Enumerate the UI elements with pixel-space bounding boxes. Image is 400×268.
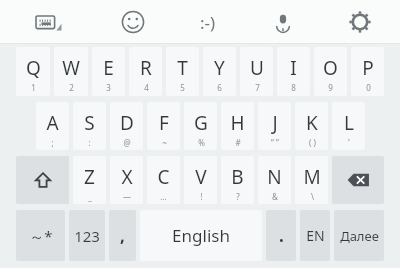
button[interactable]: .	[266, 210, 296, 261]
button[interactable]: F	[147, 102, 180, 150]
button[interactable]: A	[36, 102, 69, 150]
staticText: #	[235, 137, 241, 148]
staticText: 123	[74, 226, 100, 246]
staticText: EN	[306, 226, 325, 245]
staticText: 2	[69, 82, 74, 93]
staticText: X	[121, 164, 133, 190]
staticText: A	[46, 110, 59, 136]
staticText: &	[272, 191, 278, 202]
staticText: W	[62, 55, 80, 81]
staticText: _	[88, 191, 92, 202]
button[interactable]: J	[258, 102, 291, 150]
button[interactable]: Shift	[16, 156, 69, 204]
staticText: R	[140, 55, 152, 81]
staticText: ;	[51, 137, 54, 148]
staticText: J	[272, 110, 278, 136]
button[interactable]: Change keyboard	[0, 0, 96, 44]
staticText: \	[311, 191, 314, 202]
staticText: ,	[120, 224, 125, 247]
staticText: L	[344, 110, 354, 136]
staticText: I	[290, 55, 297, 81]
staticText: .	[279, 224, 284, 247]
staticText: English	[172, 224, 230, 247]
button[interactable]: G	[184, 102, 217, 150]
staticText: C	[157, 164, 170, 190]
button[interactable]: S	[73, 102, 106, 150]
button[interactable]: Backspace	[332, 156, 384, 204]
button[interactable]: B	[221, 156, 254, 204]
button[interactable]: Z	[73, 156, 106, 204]
staticText: ~	[162, 137, 167, 148]
button[interactable]: Y	[203, 47, 236, 96]
staticText: ( )	[309, 137, 316, 148]
button[interactable]: ,	[109, 210, 136, 261]
button[interactable]: N	[258, 156, 291, 204]
staticText: S	[84, 110, 95, 136]
staticText: V	[195, 164, 207, 190]
staticText: ～*	[29, 226, 53, 246]
staticText: E	[103, 55, 114, 81]
staticText: N	[267, 164, 282, 190]
button[interactable]: Settings	[320, 0, 400, 44]
staticText: 0	[366, 82, 371, 93]
staticText: “ ”	[271, 137, 279, 148]
staticText: F	[159, 110, 169, 136]
staticText: M	[303, 164, 321, 190]
button[interactable]: Далее	[334, 210, 384, 261]
staticText: Далее	[340, 227, 379, 245]
staticText: Z	[84, 164, 95, 190]
button[interactable]: E	[92, 47, 125, 96]
staticText: D	[120, 110, 134, 136]
button[interactable]: Text emoticons	[170, 0, 246, 44]
staticText: —	[123, 191, 131, 202]
staticText: 4	[144, 82, 149, 93]
button[interactable]: P	[351, 47, 384, 96]
button[interactable]: English	[140, 210, 262, 261]
button[interactable]: O	[314, 47, 347, 96]
staticText: ’	[348, 137, 350, 148]
button[interactable]: I	[277, 47, 310, 96]
button[interactable]: H	[221, 102, 254, 150]
staticText: 6	[217, 82, 222, 93]
button[interactable]: EN	[300, 210, 330, 261]
button[interactable]: L	[332, 102, 365, 150]
staticText: 7	[255, 82, 260, 93]
staticText: O	[323, 55, 338, 81]
staticText: U	[250, 55, 264, 81]
staticText: %	[198, 137, 205, 148]
staticText: 9	[328, 82, 333, 93]
staticText: K	[306, 110, 318, 136]
staticText: ?	[236, 191, 240, 202]
staticText: 1	[31, 82, 36, 93]
button[interactable]: C	[147, 156, 180, 204]
button[interactable]: W	[54, 47, 88, 96]
staticText: G	[194, 110, 208, 136]
button[interactable]: U	[240, 47, 273, 96]
button[interactable]: Emoji	[96, 0, 170, 44]
staticText: B	[231, 164, 244, 190]
staticText: 8	[291, 82, 296, 93]
button[interactable]: ～*	[16, 210, 65, 261]
staticText: T	[177, 55, 188, 81]
staticText: !	[200, 191, 203, 202]
button[interactable]: R	[129, 47, 162, 96]
staticText: 5	[180, 82, 185, 93]
staticText: …	[160, 191, 167, 202]
button[interactable]: X	[110, 156, 143, 204]
staticText: @	[123, 137, 131, 148]
staticText: P	[362, 55, 374, 81]
button[interactable]: 123	[69, 210, 105, 261]
button[interactable]: Voice input	[246, 0, 320, 44]
staticText: :	[88, 137, 91, 148]
staticText: :-)	[200, 11, 216, 34]
button[interactable]: Q	[16, 47, 50, 96]
button[interactable]: K	[295, 102, 328, 150]
staticText: Q	[26, 55, 41, 81]
staticText: Y	[214, 55, 225, 81]
button[interactable]: M	[295, 156, 328, 204]
staticText: 3	[106, 82, 111, 93]
staticText: H	[230, 110, 245, 136]
button[interactable]: T	[166, 47, 199, 96]
button[interactable]: V	[184, 156, 217, 204]
button[interactable]: D	[110, 102, 143, 150]
